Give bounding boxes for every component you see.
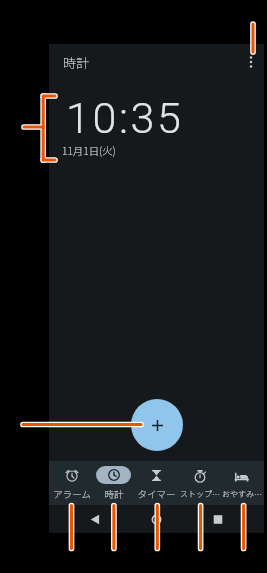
button[interactable]: タイマー bbox=[136, 466, 177, 501]
staticText: おやすみ… bbox=[222, 488, 262, 500]
button[interactable]: アラーム bbox=[51, 466, 92, 501]
button[interactable]: Add bbox=[131, 399, 183, 451]
button[interactable]: ストップ… bbox=[179, 467, 220, 500]
staticText: タイマー bbox=[137, 487, 176, 501]
button[interactable]: More options bbox=[239, 50, 263, 74]
staticText: アラーム bbox=[53, 487, 91, 501]
button[interactable]: 時計 bbox=[93, 466, 134, 501]
staticText: 時計 bbox=[63, 53, 90, 72]
button[interactable]: おやすみ… bbox=[221, 467, 262, 500]
staticText: 10:35 bbox=[66, 93, 184, 143]
staticText: 11月1日(火) bbox=[62, 143, 116, 158]
staticText: 時計 bbox=[104, 487, 124, 501]
staticText: ストップ… bbox=[180, 488, 220, 500]
